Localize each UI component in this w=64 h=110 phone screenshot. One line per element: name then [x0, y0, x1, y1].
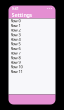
staticText: Row 5: [10, 41, 20, 46]
staticText: Row 7: [10, 50, 20, 56]
staticText: Row 9: [10, 59, 20, 65]
staticText: Row 6: [10, 46, 20, 51]
staticText: Settings: [11, 11, 32, 19]
staticText: Row 0: [10, 18, 20, 23]
staticText: •••: [46, 6, 52, 11]
staticText: Row 1: [10, 23, 20, 28]
staticText: 9:41: [11, 6, 18, 11]
staticText: Row 2: [10, 27, 20, 33]
staticText: Row 8: [10, 55, 20, 60]
staticText: Row 4: [10, 36, 20, 42]
staticText: Row 11: [10, 69, 22, 74]
staticText: Row 3: [10, 32, 20, 37]
staticText: Row 10: [10, 64, 22, 69]
